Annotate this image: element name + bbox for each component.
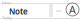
button[interactable]: Account (66, 3, 79, 16)
staticText: Note (9, 6, 28, 17)
staticText: Today (2, 15, 12, 20)
staticText: A (69, 2, 76, 17)
staticText: Inbox (2, 0, 11, 5)
